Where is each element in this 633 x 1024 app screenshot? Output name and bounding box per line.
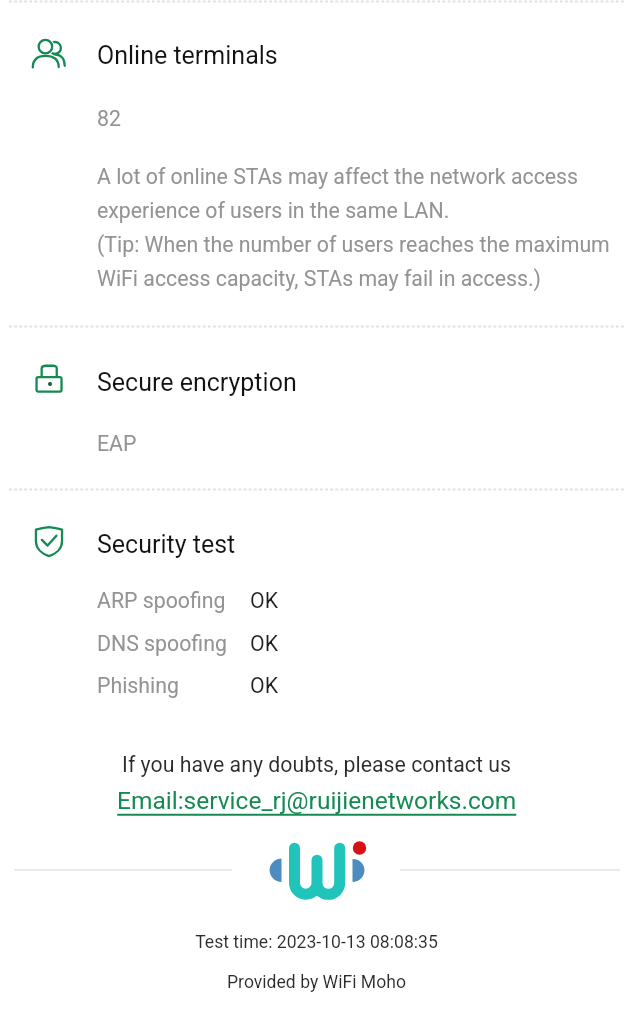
button[interactable]: Secure encryption	[0, 331, 633, 488]
staticText: If you have any doubts, please contact u…	[0, 752, 633, 777]
other: Online terminals	[31, 37, 67, 73]
staticText: Phishing	[97, 673, 250, 698]
staticText: 82	[97, 106, 121, 131]
staticText: ARP spoofing	[97, 588, 250, 613]
button[interactable]: Email:service_rj@ruijienetworks.com	[0, 784, 633, 818]
staticText: Email:service_rj@ruijienetworks.com	[117, 786, 517, 815]
staticText: Online terminals	[97, 41, 278, 70]
staticText: Security test	[97, 530, 236, 559]
staticText: DNS spoofing	[97, 631, 250, 656]
staticText: OK	[250, 588, 279, 613]
staticText: A lot of online STAs may affect the netw…	[97, 164, 610, 291]
staticText: OK	[250, 631, 279, 656]
other: Secure encryption	[31, 362, 67, 398]
other: WiFi Moho logo	[269, 840, 367, 900]
staticText: Secure encryption	[97, 368, 297, 397]
staticText: Provided by WiFi Moho	[0, 972, 633, 993]
staticText: Test time: 2023-10-13 08:08:35	[0, 932, 633, 953]
button[interactable]: Online terminals	[0, 6, 633, 325]
staticText: OK	[250, 673, 279, 698]
staticText: EAP	[97, 431, 137, 456]
button[interactable]: Security test	[0, 494, 633, 719]
other: Security test	[31, 524, 67, 560]
